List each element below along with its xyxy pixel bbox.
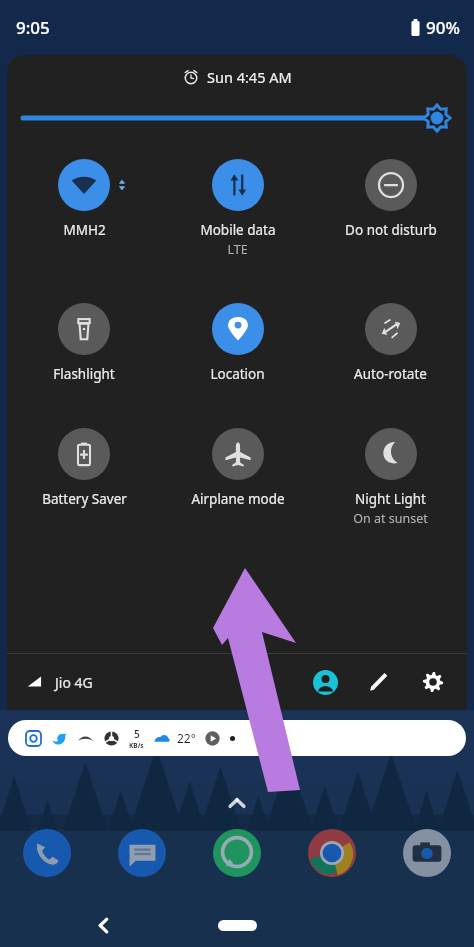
- button[interactable]: Home: [207, 912, 267, 938]
- button[interactable]: Camera: [379, 829, 474, 877]
- staticText: Jio 4G: [55, 673, 93, 692]
- staticText: Sun 4:45 AM: [207, 67, 292, 87]
- button[interactable]: Airplane mode: [161, 428, 314, 508]
- button[interactable]: MMH2: [7, 159, 161, 239]
- staticText: 5: [134, 727, 140, 741]
- staticText: KB/s: [129, 741, 144, 750]
- button[interactable]: WhatsApp: [189, 829, 284, 877]
- staticText: On at sunset: [353, 510, 428, 527]
- staticText: MMH2: [63, 221, 106, 239]
- staticText: Battery Saver: [42, 490, 127, 508]
- button[interactable]: Phone: [0, 829, 94, 877]
- staticText: Do not disturb: [345, 221, 437, 239]
- button[interactable]: Chrome: [284, 829, 379, 877]
- button[interactable]: Location: [161, 303, 314, 383]
- button[interactable]: User account: [307, 664, 343, 700]
- button[interactable]: Brightness: [23, 105, 451, 131]
- button[interactable]: Flashlight: [7, 303, 161, 383]
- staticText: 22°: [177, 730, 196, 746]
- staticText: Location: [210, 365, 265, 383]
- staticText: Mobile data: [200, 221, 276, 239]
- staticText: Night Light: [355, 490, 426, 508]
- button[interactable]: Back: [81, 903, 125, 947]
- button[interactable]: Do not disturb: [314, 159, 467, 239]
- staticText: 9:05: [16, 16, 50, 39]
- button[interactable]: Auto-rotate: [314, 303, 467, 383]
- staticText: Airplane mode: [191, 490, 285, 508]
- button[interactable]: Settings: [415, 664, 451, 700]
- button[interactable]: 5: [8, 720, 466, 756]
- button[interactable]: Battery Saver: [7, 428, 161, 508]
- button[interactable]: Edit tiles: [361, 664, 397, 700]
- staticText: 90%: [426, 16, 460, 39]
- staticText: Auto-rotate: [354, 365, 427, 383]
- staticText: LTE: [227, 241, 248, 258]
- button[interactable]: Mobile data: [161, 159, 314, 258]
- staticText: Flashlight: [53, 365, 115, 383]
- button[interactable]: Messages: [94, 829, 189, 877]
- button[interactable]: Night Light: [314, 428, 467, 527]
